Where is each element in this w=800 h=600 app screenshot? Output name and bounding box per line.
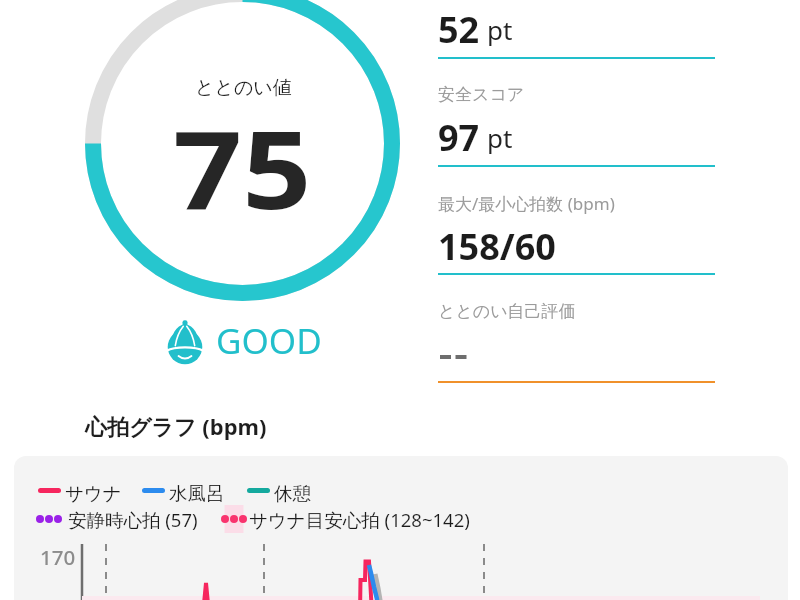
staticText: 最大/最小心拍数 (bpm) xyxy=(438,192,615,215)
staticText: 97 xyxy=(438,113,480,162)
staticText: pt xyxy=(487,12,513,47)
other: Condition GOOD xyxy=(166,320,204,365)
staticText: 水風呂 xyxy=(169,482,225,505)
button[interactable]: 最大/最小心拍数 (bpm) xyxy=(438,176,715,275)
staticText: GOOD xyxy=(216,317,322,365)
staticText: pt xyxy=(487,120,513,155)
staticText: サウナ目安心拍 (128~142) xyxy=(249,507,470,532)
staticText: 心拍グラフ (bpm) xyxy=(85,411,267,441)
staticText: サウナ xyxy=(65,482,122,505)
staticText: 52 xyxy=(438,5,480,54)
staticText: ととのい値 xyxy=(195,76,292,100)
button[interactable]: 安全スコア xyxy=(438,68,715,167)
staticText: 170 xyxy=(40,543,76,571)
staticText: 安静時心拍 (57) xyxy=(68,507,198,532)
button[interactable]: Condition GOOD xyxy=(166,318,322,366)
staticText: 安全スコア xyxy=(438,84,525,105)
staticText: ととのい自己評価 xyxy=(438,301,576,322)
button[interactable]: 52 xyxy=(438,0,715,59)
button[interactable]: ととのい自己評価 xyxy=(438,284,715,383)
staticText: 休憩 xyxy=(274,482,311,505)
staticText: 158/60 xyxy=(438,222,556,271)
staticText: 75 xyxy=(173,94,312,241)
